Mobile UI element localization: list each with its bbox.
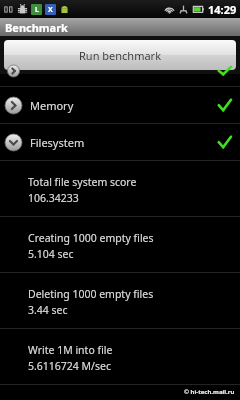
button[interactable]: Total file system score	[0, 161, 240, 216]
staticText: 106.34233	[28, 191, 79, 205]
staticText: 14:29	[208, 2, 237, 17]
staticText: Creating 1000 empty files	[28, 231, 154, 245]
staticText: Run benchmark	[79, 48, 162, 63]
button[interactable]	[0, 74, 240, 86]
staticText: Total file system score	[28, 175, 137, 189]
staticText: Benchmark	[5, 20, 68, 35]
staticText: 5.6116724 M/sec	[28, 359, 112, 373]
button[interactable]: Memory	[0, 87, 240, 123]
staticText: Filesystem	[30, 135, 85, 150]
staticText: © hi-tech.mail.ru	[184, 388, 235, 396]
staticText: Memory	[30, 98, 74, 113]
staticText: Deleting 1000 empty files	[28, 287, 154, 301]
staticText: 5.104 sec	[28, 247, 74, 261]
button[interactable]: Filesystem	[0, 124, 240, 160]
button[interactable]: Run benchmark	[4, 40, 236, 70]
button[interactable]: Write 1M into file	[0, 329, 240, 384]
button[interactable]: Creating 1000 empty files	[0, 217, 240, 272]
staticText: X	[48, 5, 53, 15]
staticText: L	[35, 5, 39, 15]
button[interactable]: Read 1M from file	[0, 385, 240, 400]
button[interactable]: Deleting 1000 empty files	[0, 273, 240, 328]
staticText: 3.44 sec	[28, 303, 68, 317]
staticText: Write 1M into file	[28, 343, 113, 357]
